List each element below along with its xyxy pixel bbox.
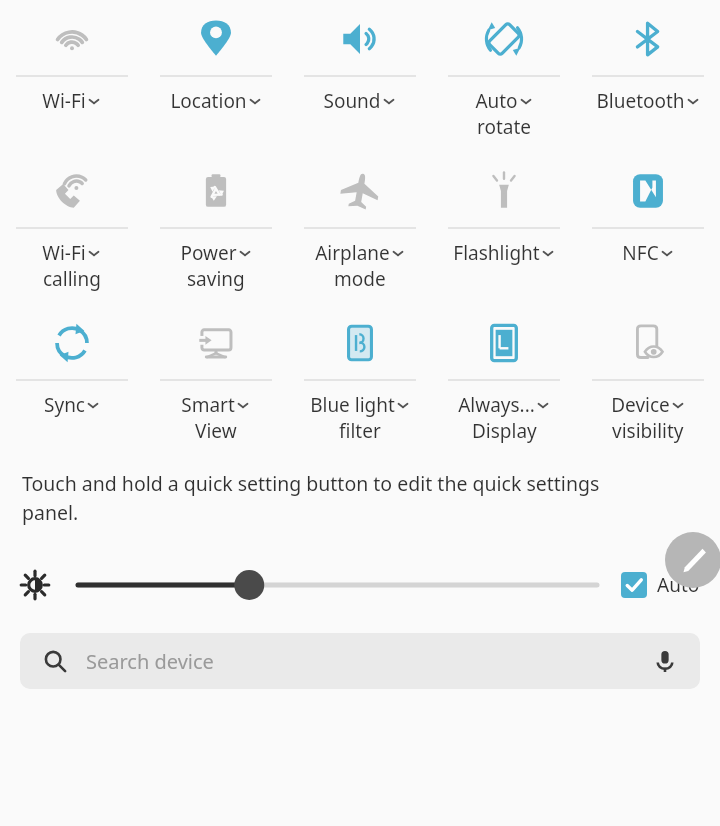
other: Voice search [652, 648, 678, 674]
button[interactable]: Wi-Fi [0, 154, 144, 292]
other: Brightness [20, 570, 50, 600]
staticText: Device [611, 392, 670, 418]
staticText: Smart [181, 392, 235, 418]
staticText: Auto [657, 572, 700, 598]
staticText: Location [170, 88, 247, 114]
staticText: Auto [475, 88, 518, 114]
staticText: Touch and hold a quick setting button to… [22, 470, 640, 525]
staticText: Blue light [310, 392, 395, 418]
button[interactable]: Search device [20, 633, 700, 689]
staticText: calling [43, 266, 101, 292]
button[interactable]: Smart [144, 306, 288, 444]
staticText: NFC [622, 240, 659, 266]
staticText: Always... [458, 392, 535, 418]
staticText: filter [339, 418, 381, 444]
button[interactable]: Location [144, 2, 288, 114]
button[interactable]: Airplane [288, 154, 432, 292]
button[interactable]: Sound [288, 2, 432, 114]
staticText: Search device [86, 648, 214, 675]
staticText: rotate [477, 114, 532, 140]
staticText: Power [180, 240, 237, 266]
button[interactable]: Bluetooth [576, 2, 720, 114]
button[interactable]: Auto [432, 2, 576, 140]
staticText: visibility [612, 418, 684, 444]
staticText: saving [187, 266, 245, 292]
button[interactable]: Always... [432, 306, 576, 444]
button[interactable]: Sync [0, 306, 144, 418]
button[interactable]: NFC [576, 154, 720, 266]
staticText: Flashlight [453, 240, 540, 266]
staticText: View [195, 418, 237, 444]
staticText: Wi-Fi [42, 88, 86, 114]
staticText: Sync [44, 392, 85, 418]
staticText: Display [472, 418, 537, 444]
button[interactable]: Blue light [288, 306, 432, 444]
button[interactable]: Power [144, 154, 288, 292]
button[interactable]: Auto [621, 572, 700, 598]
staticText: mode [334, 266, 386, 292]
staticText: Airplane [315, 240, 390, 266]
button[interactable]: Flashlight [432, 154, 576, 266]
staticText: Wi-Fi [42, 240, 86, 266]
button[interactable] [78, 565, 597, 605]
staticText: Bluetooth [596, 88, 685, 114]
button[interactable]: Wi-Fi [0, 2, 144, 114]
staticText: Sound [323, 88, 381, 114]
button[interactable]: Device [576, 306, 720, 444]
button[interactable]: Edit quick settings [665, 532, 720, 588]
